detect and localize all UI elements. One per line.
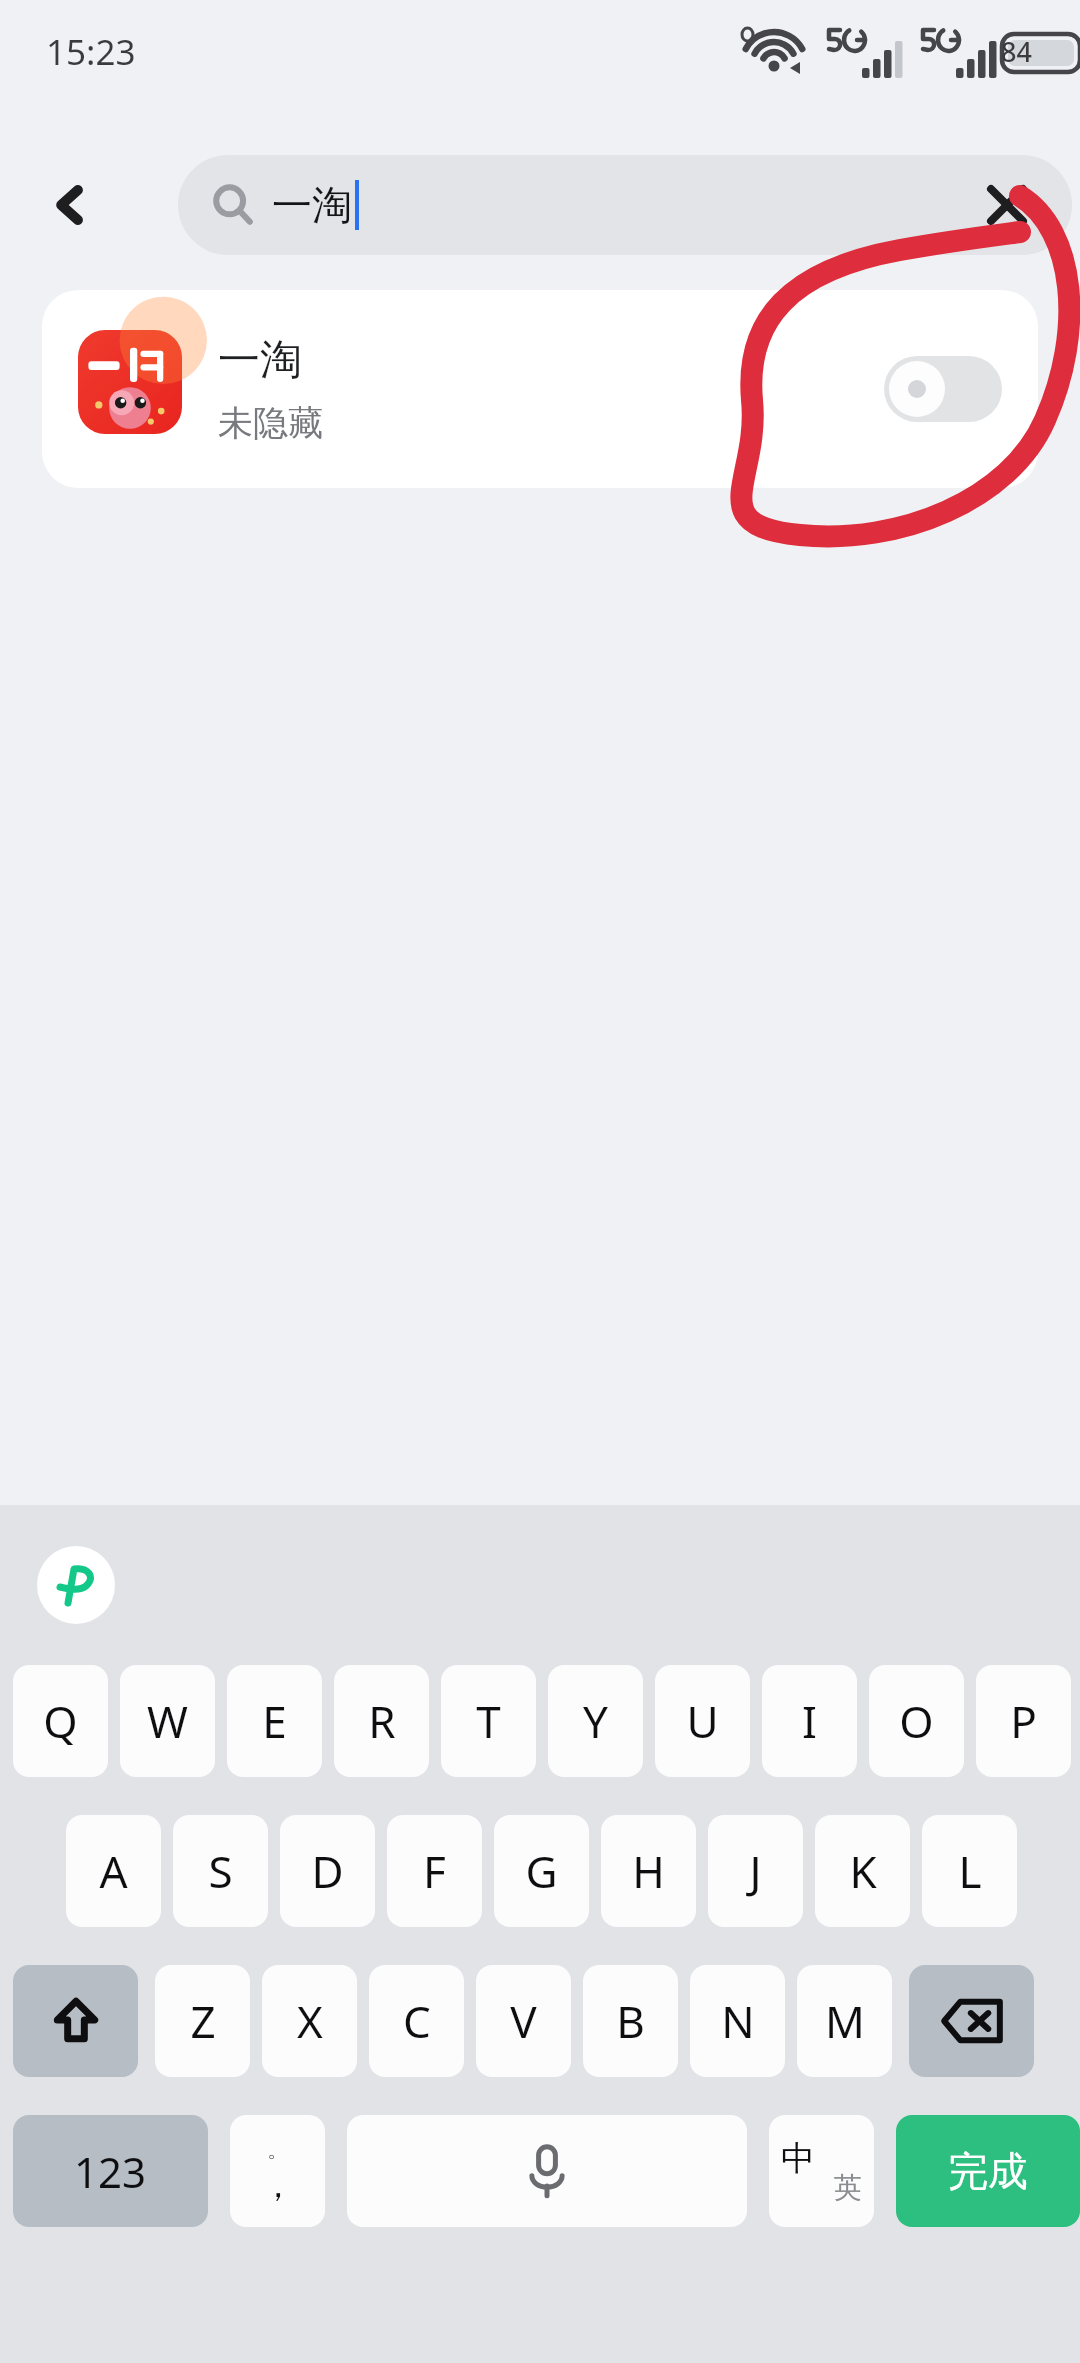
staticText: E bbox=[262, 1691, 287, 1751]
button[interactable]: Space, voice input bbox=[347, 2115, 747, 2227]
button[interactable]: D bbox=[280, 1815, 375, 1927]
staticText: Q bbox=[43, 1691, 78, 1751]
staticText: 英 bbox=[834, 2170, 862, 2205]
button[interactable]: J bbox=[708, 1815, 803, 1927]
staticText: Y bbox=[583, 1691, 608, 1751]
button[interactable]: N bbox=[690, 1965, 785, 2077]
button[interactable]: A bbox=[66, 1815, 161, 1927]
button[interactable]: C bbox=[369, 1965, 464, 2077]
staticText: Z bbox=[190, 1991, 216, 2051]
staticText: A bbox=[99, 1841, 128, 1901]
staticText: L bbox=[958, 1841, 982, 1901]
button[interactable]: T bbox=[441, 1665, 536, 1777]
staticText: 完成 bbox=[948, 2146, 1028, 2196]
button[interactable]: Y bbox=[548, 1665, 643, 1777]
staticText: K bbox=[849, 1841, 877, 1901]
button[interactable]: O bbox=[869, 1665, 964, 1777]
staticText: F bbox=[423, 1841, 446, 1901]
button[interactable]: R bbox=[334, 1665, 429, 1777]
button[interactable]: Hide app toggle, off bbox=[884, 356, 1002, 422]
staticText: 未隐藏 bbox=[218, 401, 323, 445]
staticText: J bbox=[749, 1841, 762, 1901]
staticText: 123 bbox=[74, 2143, 147, 2200]
button[interactable]: P bbox=[976, 1665, 1071, 1777]
button[interactable]: Z bbox=[155, 1965, 250, 2077]
staticText: B bbox=[616, 1991, 645, 2051]
button[interactable]: G bbox=[494, 1815, 589, 1927]
button[interactable]: U bbox=[655, 1665, 750, 1777]
staticText: ， bbox=[261, 2164, 295, 2207]
staticText: W bbox=[147, 1691, 188, 1751]
button[interactable]: 123 bbox=[13, 2115, 208, 2227]
button[interactable]: F bbox=[387, 1815, 482, 1927]
button[interactable]: Backspace bbox=[909, 1965, 1034, 2077]
staticText: S bbox=[208, 1841, 233, 1901]
button[interactable]: Input method logo bbox=[37, 1546, 115, 1624]
button[interactable]: Shift bbox=[13, 1965, 138, 2077]
staticText: V bbox=[510, 1991, 537, 2051]
button[interactable]: L bbox=[922, 1815, 1017, 1927]
button[interactable]: 一淘 bbox=[42, 290, 1038, 488]
staticText: H bbox=[632, 1841, 665, 1901]
button[interactable]: 完成 bbox=[896, 2115, 1080, 2227]
staticText: 84 bbox=[1001, 33, 1032, 70]
staticText: C bbox=[403, 1991, 431, 2051]
staticText: I bbox=[802, 1691, 817, 1751]
button[interactable]: V bbox=[476, 1965, 571, 2077]
staticText: R bbox=[368, 1691, 396, 1751]
button[interactable]: W bbox=[120, 1665, 215, 1777]
staticText: 。 bbox=[267, 2136, 289, 2164]
button[interactable]: 一淘 bbox=[178, 155, 1072, 255]
button[interactable]: I bbox=[762, 1665, 857, 1777]
button[interactable]: X bbox=[262, 1965, 357, 2077]
button[interactable]: K bbox=[815, 1815, 910, 1927]
staticText: 15:23 bbox=[46, 28, 136, 76]
button[interactable]: Q bbox=[13, 1665, 108, 1777]
staticText: O bbox=[899, 1691, 934, 1751]
button[interactable]: S bbox=[173, 1815, 268, 1927]
staticText: P bbox=[1010, 1691, 1037, 1751]
button[interactable]: B bbox=[583, 1965, 678, 2077]
staticText: 中 bbox=[781, 2137, 815, 2180]
staticText: M bbox=[825, 1991, 865, 2051]
button[interactable]: H bbox=[601, 1815, 696, 1927]
button[interactable]: E bbox=[227, 1665, 322, 1777]
staticText: 一淘 bbox=[272, 180, 352, 230]
button[interactable]: Back bbox=[30, 165, 110, 245]
staticText: G bbox=[525, 1841, 558, 1901]
button[interactable]: Clear search bbox=[968, 166, 1046, 244]
staticText: X bbox=[297, 1991, 323, 2051]
button[interactable]: Comma bbox=[230, 2115, 325, 2227]
staticText: N bbox=[721, 1991, 755, 2051]
staticText: U bbox=[686, 1691, 719, 1751]
button[interactable]: M bbox=[797, 1965, 892, 2077]
staticText: T bbox=[476, 1691, 501, 1751]
staticText: D bbox=[311, 1841, 344, 1901]
button[interactable]: Switch Chinese English bbox=[769, 2115, 874, 2227]
staticText: 一淘 bbox=[218, 334, 302, 387]
